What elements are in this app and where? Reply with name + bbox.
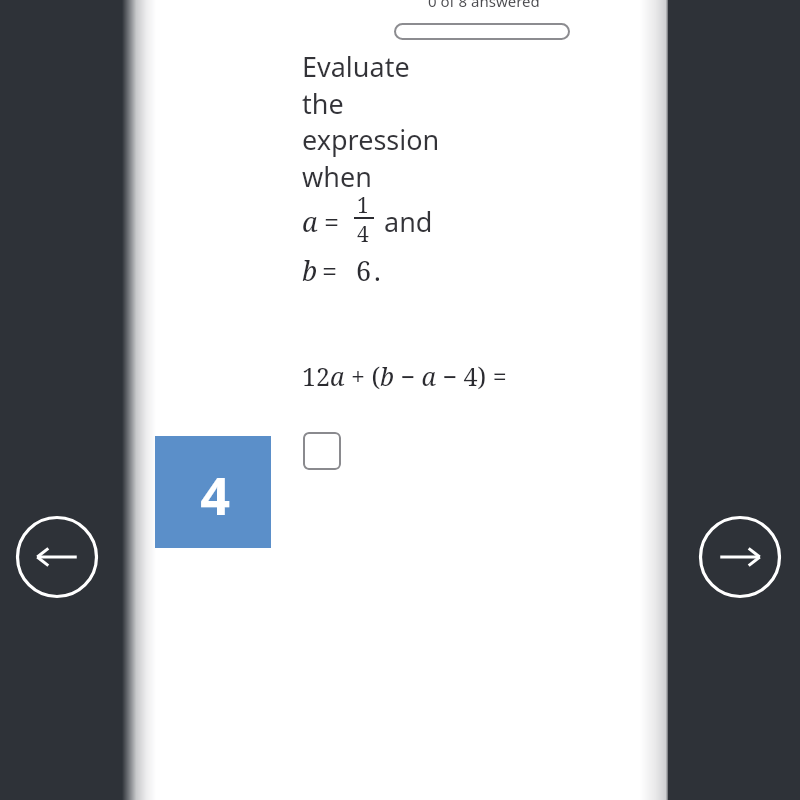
staticText: expression <box>302 121 440 158</box>
staticText: . <box>374 252 381 289</box>
staticText: 0 of 8 answered <box>428 0 540 11</box>
staticText: 1 <box>357 191 369 220</box>
button[interactable]: Previous question <box>15 515 99 599</box>
staticText: a <box>302 203 318 240</box>
staticText: 4 <box>357 220 369 249</box>
staticText: Evaluate <box>302 48 410 85</box>
staticText: = <box>324 203 340 240</box>
staticText: the <box>302 85 344 122</box>
staticText: when <box>302 158 372 195</box>
button[interactable] <box>303 432 341 470</box>
staticText: = <box>322 252 338 289</box>
staticText: 6 <box>356 252 372 289</box>
staticText: and <box>384 203 433 240</box>
staticText: 12a + (b − a − 4) = <box>302 359 507 393</box>
staticText: 4 <box>200 459 230 530</box>
staticText: b <box>302 252 318 289</box>
button[interactable]: 4 <box>155 436 271 548</box>
button[interactable]: Next question <box>698 515 782 599</box>
